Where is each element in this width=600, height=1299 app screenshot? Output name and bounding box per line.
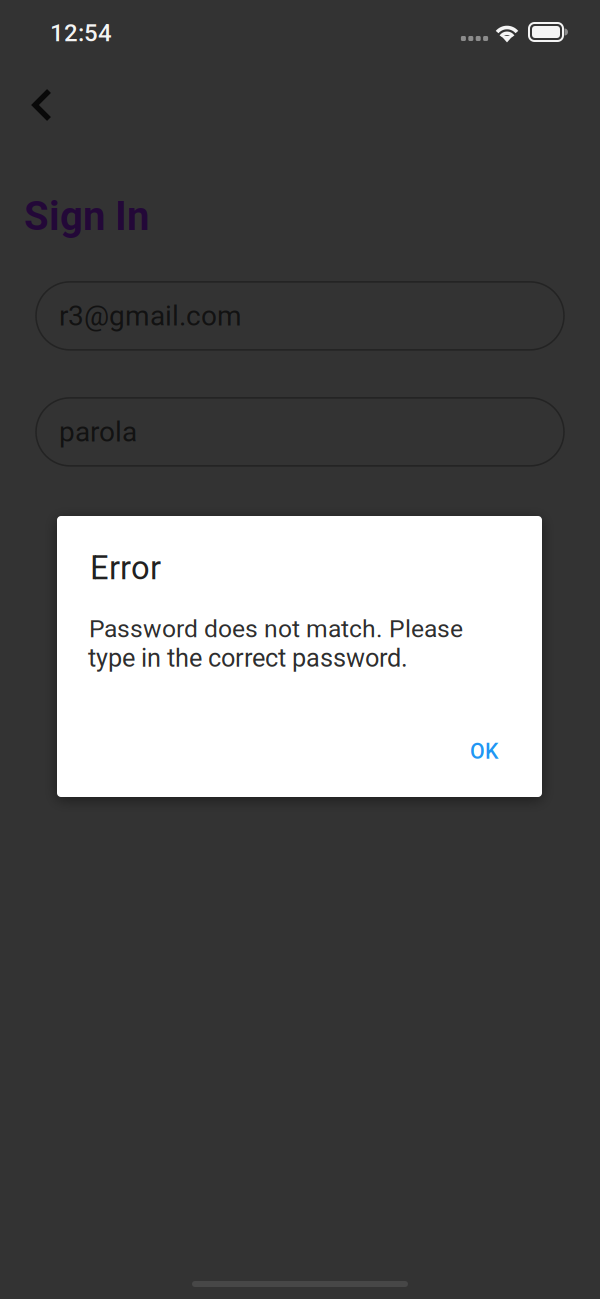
staticText: Error <box>90 549 161 587</box>
staticText: Password does not match. Please <box>89 614 463 643</box>
button[interactable]: OK <box>452 726 516 777</box>
staticText: OK <box>470 739 498 764</box>
staticText: parola <box>59 415 137 448</box>
staticText: Sign In <box>24 193 149 240</box>
staticText: r3@gmail.com <box>59 299 242 332</box>
button[interactable]: parola <box>36 398 564 466</box>
button[interactable]: r3@gmail.com <box>36 282 564 350</box>
staticText: 12:54 <box>50 19 112 47</box>
button[interactable]: Back <box>14 79 60 131</box>
staticText: type in the correct password. <box>88 643 408 673</box>
